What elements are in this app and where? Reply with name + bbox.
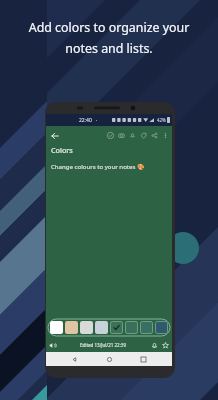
button[interactable]: Reminder (150, 341, 159, 350)
staticText: Change colours to your notes 🎨 (51, 162, 145, 170)
button[interactable]: Colour 8 (155, 321, 168, 334)
button[interactable]: Back (69, 354, 80, 365)
button[interactable]: Home (104, 354, 115, 365)
button[interactable]: Done (105, 129, 116, 142)
button[interactable]: Colour 1 (50, 321, 63, 334)
button[interactable]: Camera (116, 129, 127, 142)
button[interactable]: Recents (138, 354, 149, 365)
staticText: Colors (51, 145, 73, 155)
staticText: Edited 13/Jul/21 22:39 (80, 342, 127, 348)
button[interactable]: Colour 3 (80, 321, 93, 334)
staticText: 22:40 (79, 117, 92, 124)
button[interactable]: More options (160, 129, 171, 142)
button[interactable]: Colour 5 (110, 321, 123, 334)
button[interactable]: Read aloud (48, 341, 57, 350)
button[interactable]: Colour 2 (65, 321, 78, 334)
button[interactable]: Colour 7 (140, 321, 153, 334)
button[interactable]: Back (48, 129, 61, 142)
staticText: Add colors to organize your notes and li… (0, 19, 218, 57)
button[interactable]: Favourite (161, 341, 170, 350)
button[interactable]: Colour 6 (125, 321, 138, 334)
button[interactable]: Share (149, 129, 160, 142)
button[interactable]: Reminder (127, 129, 138, 142)
button[interactable]: Label (138, 129, 149, 142)
button[interactable]: Colour 4 (95, 321, 108, 334)
staticText: 42% (157, 117, 166, 123)
